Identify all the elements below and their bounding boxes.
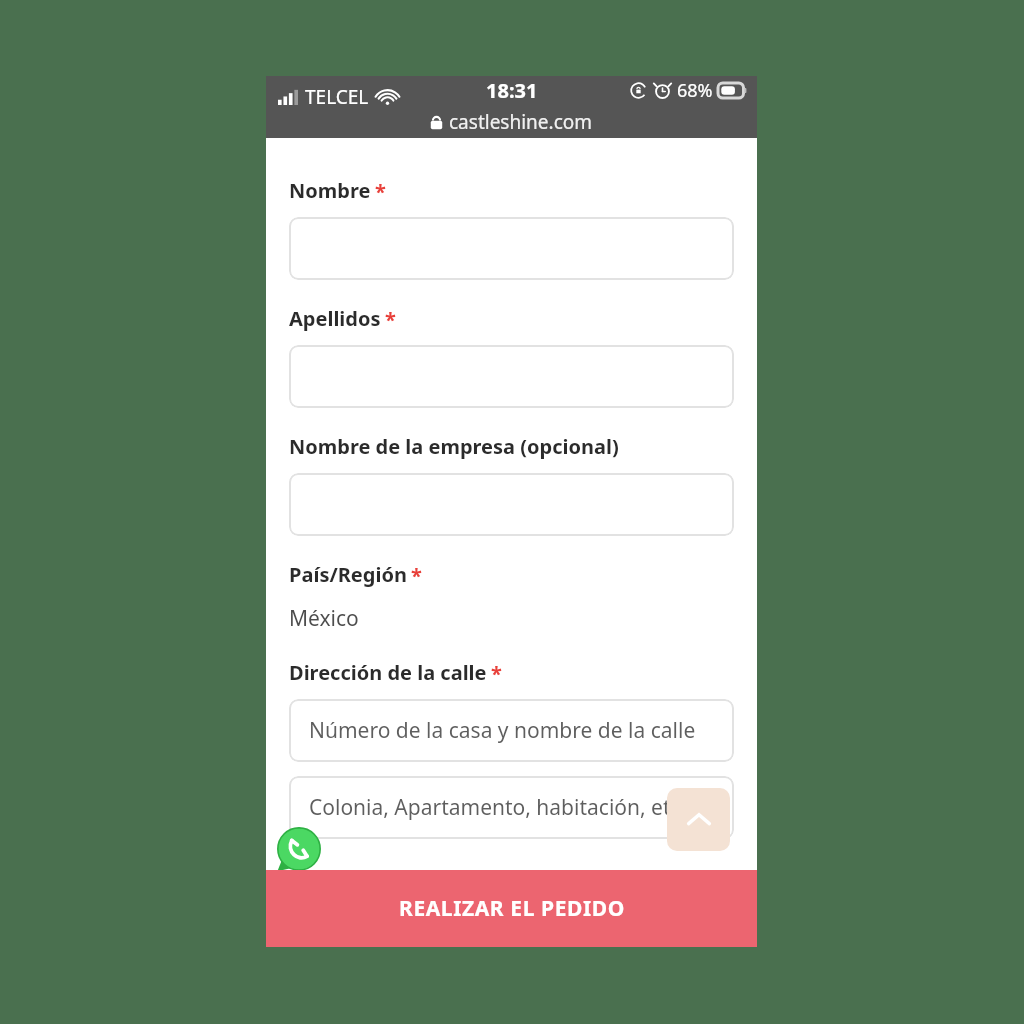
staticText: * [375,178,386,205]
button[interactable] [289,217,734,280]
staticText: castleshine.com [449,109,593,135]
staticText: * [491,660,502,687]
staticText: 18:31 [486,77,538,104]
staticText: Nombre de la empresa (opcional) [289,433,619,460]
button[interactable]: WhatsApp [276,826,322,872]
staticText: Colonia, Apartamento, habitación, etc. (… [309,793,734,822]
staticText: Nombre [289,177,371,204]
button[interactable]: Colonia, Apartamento, habitación, etc. (… [289,776,734,839]
staticText: * [385,306,396,333]
button[interactable]: Número de la casa y nombre de la calle [289,699,734,762]
button[interactable] [289,473,734,536]
staticText: TELCEL [305,84,369,110]
staticText: REALIZAR EL PEDIDO [399,894,625,923]
button[interactable]: Scroll to top [667,788,730,851]
staticText: México [289,604,359,633]
button[interactable] [289,345,734,408]
staticText: * [411,562,422,589]
staticText: Apellidos [289,305,381,332]
staticText: Número de la casa y nombre de la calle [309,716,696,745]
button[interactable]: REALIZAR EL PEDIDO [266,870,757,947]
staticText: 68% [677,78,713,103]
staticText: País/Región [289,561,407,588]
staticText: Dirección de la calle [289,659,487,686]
